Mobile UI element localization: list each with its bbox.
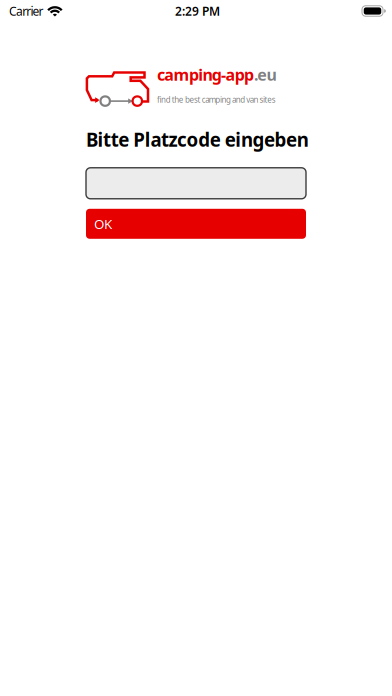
staticText: 2:29 PM xyxy=(175,3,220,19)
button[interactable]: Platzcode xyxy=(86,168,306,199)
button[interactable]: OK xyxy=(86,209,306,239)
staticText: OK xyxy=(94,215,112,233)
staticText: Bitte Platzcode eingeben xyxy=(86,127,309,152)
staticText: .eu xyxy=(254,64,277,85)
staticText: find the best camping and van sites xyxy=(157,94,276,105)
staticText: camping-app xyxy=(157,64,254,85)
staticText: Carrier xyxy=(9,3,44,19)
